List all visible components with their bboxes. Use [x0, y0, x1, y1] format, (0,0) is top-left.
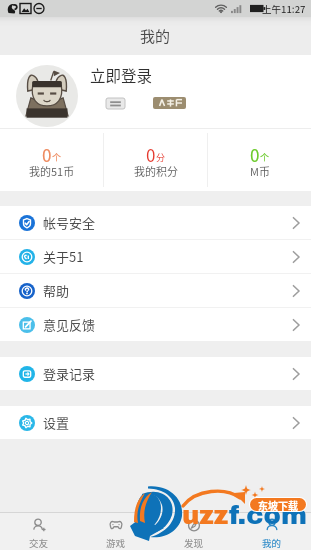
staticText: 我的积分	[134, 163, 178, 179]
staticText: 帐号安全	[43, 213, 96, 232]
staticText: 关于51	[43, 247, 84, 266]
button[interactable]: 设置	[0, 406, 311, 439]
button[interactable]: 帮助	[0, 274, 311, 307]
staticText: 个	[260, 151, 270, 164]
staticText: 意见反馈	[43, 315, 96, 334]
staticText: 立即登录	[90, 64, 153, 86]
staticText: f.com	[229, 501, 307, 529]
button[interactable]: 0	[208, 129, 311, 191]
staticText: 设置	[43, 413, 70, 432]
button[interactable]: 游戏	[77, 513, 155, 550]
staticText: 我的51币	[29, 163, 75, 179]
staticText: 0	[250, 142, 260, 167]
staticText: 登录记录	[43, 364, 96, 383]
button[interactable]: 帐号安全	[0, 206, 311, 239]
button[interactable]: 0	[0, 129, 103, 191]
staticText: 帮助	[43, 281, 70, 300]
button[interactable]: 交友	[0, 513, 77, 550]
staticText: uzz	[182, 501, 229, 529]
staticText: 我的	[140, 25, 171, 47]
button[interactable]: 登录记录	[0, 357, 311, 390]
button[interactable]: 立即登录	[0, 55, 311, 128]
button[interactable]: 意见反馈	[0, 308, 311, 341]
button[interactable]: 0	[104, 129, 207, 191]
staticText: 个	[52, 151, 62, 164]
staticText: 发现	[184, 536, 204, 550]
staticText: 0	[42, 142, 52, 167]
staticText: 上午11:27	[262, 2, 306, 16]
staticText: 0	[146, 142, 156, 167]
button[interactable]: 发现	[155, 513, 233, 550]
staticText: M币	[250, 163, 270, 179]
button[interactable]: 关于51	[0, 240, 311, 273]
staticText: 游戏	[106, 536, 126, 550]
button[interactable]: 我的	[233, 513, 311, 550]
staticText: 分	[156, 151, 166, 164]
staticText: 我的	[262, 536, 282, 550]
staticText: 交友	[29, 536, 49, 550]
staticText: 东坡下载	[258, 498, 298, 511]
